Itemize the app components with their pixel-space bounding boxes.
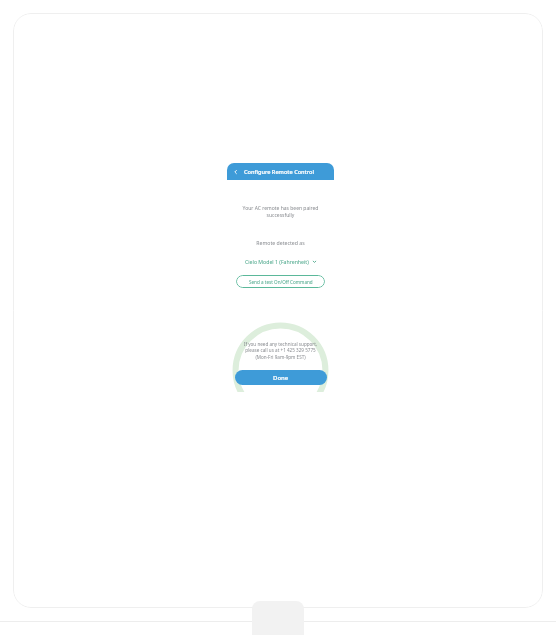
button[interactable]: Send a test On/Off Command	[236, 275, 325, 288]
staticText: Your AC remote has been paired successfu…	[235, 205, 326, 219]
staticText: Configure Remote Control	[244, 168, 314, 176]
staticText: Cielo Model 1 (Fahrenheit)	[245, 258, 309, 265]
staticText: Send a test On/Off Command	[249, 279, 313, 285]
button[interactable]: Cielo Model 1 (Fahrenheit)	[241, 256, 321, 267]
staticText: If you need any technical support, pleas…	[232, 341, 329, 360]
staticText: Done	[273, 374, 289, 382]
staticText: Remote detected as	[227, 239, 334, 246]
button[interactable]: Back	[231, 167, 241, 177]
button[interactable]: Done	[235, 370, 327, 385]
